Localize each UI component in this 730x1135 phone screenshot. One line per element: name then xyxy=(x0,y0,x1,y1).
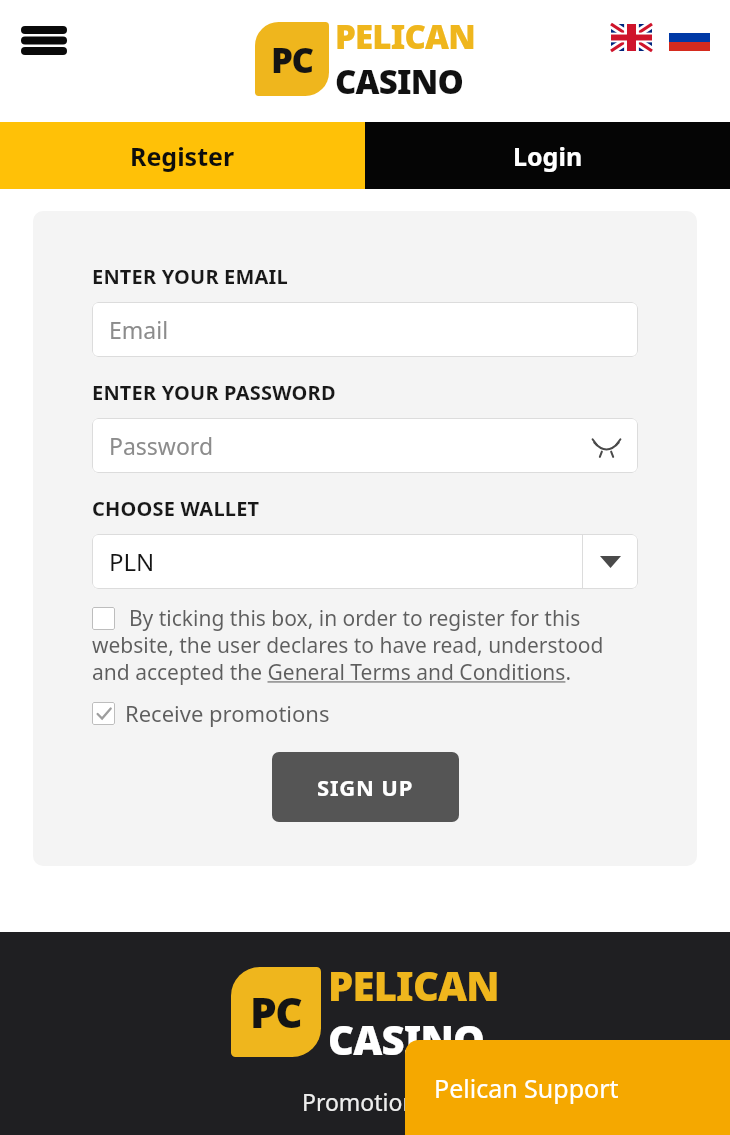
staticText: CHOOSE WALLET xyxy=(92,495,260,522)
staticText: By ticking this box, in order to registe… xyxy=(92,604,638,686)
staticText: Email xyxy=(109,314,169,345)
button[interactable]: Show password xyxy=(586,426,626,466)
staticText: ENTER YOUR PASSWORD xyxy=(92,379,336,406)
button[interactable]: Menu xyxy=(12,8,76,72)
staticText: PELICAN xyxy=(335,14,475,59)
staticText: CASINO xyxy=(335,59,463,104)
staticText: PLN xyxy=(109,545,155,578)
staticText: PC xyxy=(250,983,302,1041)
staticText: PELICAN xyxy=(328,958,499,1012)
button[interactable]: By ticking this box, in order to registe… xyxy=(92,604,638,686)
staticText: Register xyxy=(130,139,235,173)
button[interactable]: Login xyxy=(365,122,730,189)
staticText: SIGN UP xyxy=(317,772,414,802)
staticText: Password xyxy=(109,430,214,461)
staticText: Promotions xyxy=(302,1086,428,1117)
staticText: PC xyxy=(271,36,313,83)
staticText: Receive promotions xyxy=(125,698,330,728)
staticText: Pelican Support xyxy=(434,1071,619,1105)
button[interactable]: PLN xyxy=(92,534,638,589)
button[interactable]: Email xyxy=(92,302,638,357)
button[interactable]: Register xyxy=(0,122,365,189)
button[interactable]: Russian xyxy=(669,24,710,51)
button[interactable]: English xyxy=(611,24,652,51)
button[interactable]: Receive promotions xyxy=(92,698,330,728)
staticText: CASINO xyxy=(328,1012,485,1066)
staticText: ENTER YOUR EMAIL xyxy=(92,263,288,290)
button[interactable]: Password xyxy=(92,418,638,473)
button[interactable]: SIGN UP xyxy=(272,752,459,822)
staticText: Login xyxy=(513,139,583,173)
button[interactable]: Pelican Support xyxy=(405,1040,730,1135)
